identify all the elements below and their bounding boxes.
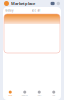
button[interactable]: Account	[4, 1, 9, 6]
button[interactable]: You	[46, 87, 61, 100]
button[interactable]: Shop	[3, 87, 17, 100]
staticText: Shop	[8, 95, 12, 96]
button[interactable]: Cart	[32, 87, 46, 100]
button[interactable]: Settings	[57, 2, 60, 5]
button[interactable]: Notifications	[51, 2, 55, 5]
staticText: Cart	[38, 95, 41, 96]
staticText: See all	[31, 9, 40, 12]
staticText: Search	[22, 95, 28, 96]
staticText: You	[52, 95, 55, 96]
staticText: Marketplace	[11, 1, 35, 6]
button[interactable]: Search	[17, 87, 32, 100]
staticText: Today	[5, 9, 13, 12]
